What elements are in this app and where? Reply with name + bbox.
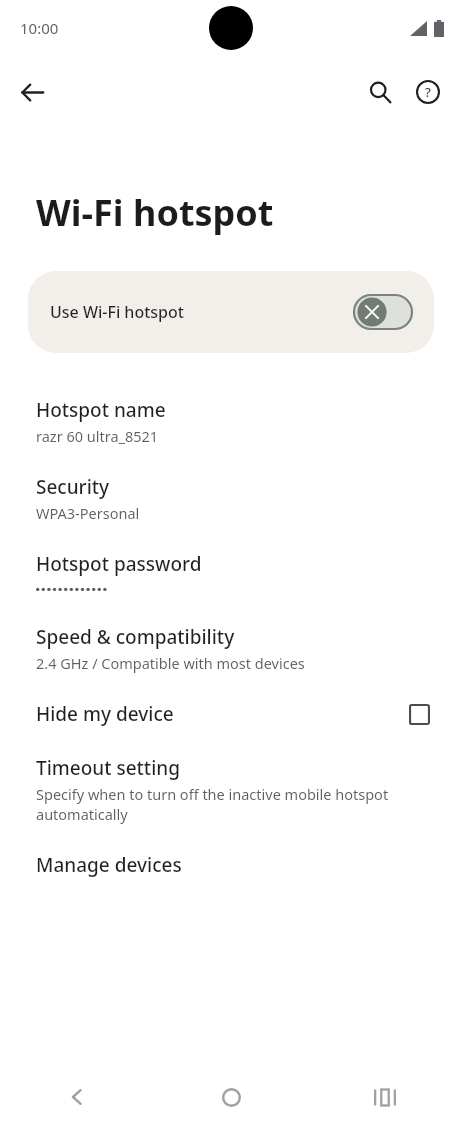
staticText: Manage devices — [36, 852, 182, 878]
button[interactable]: Security — [0, 460, 462, 537]
button[interactable]: Help — [404, 68, 452, 116]
button[interactable]: Recent apps — [308, 1065, 462, 1129]
button[interactable]: Search — [356, 68, 404, 116]
staticText: 2.4 GHz / Compatible with most devices — [36, 653, 305, 673]
button[interactable]: Hide my device — [0, 687, 462, 741]
staticText: razr 60 ultra_8521 — [36, 426, 159, 446]
button[interactable]: Use Wi-Fi hotspot toggle, off — [354, 295, 412, 329]
button[interactable]: Timeout setting — [0, 741, 462, 838]
staticText: Security — [36, 474, 110, 500]
button[interactable]: Use Wi-Fi hotspot — [28, 271, 434, 353]
button[interactable]: Hotspot name — [0, 383, 462, 460]
staticText: Hotspot password — [36, 551, 202, 577]
button[interactable]: Manage devices — [0, 838, 462, 892]
staticText: ? — [425, 83, 431, 101]
button[interactable]: Speed & compatibility — [0, 610, 462, 687]
staticText: Specify when to turn off the inactive mo… — [36, 784, 430, 824]
button[interactable]: Hotspot password — [0, 537, 462, 610]
staticText: Timeout setting — [36, 755, 180, 781]
button[interactable]: Home — [154, 1065, 308, 1129]
staticText: Speed & compatibility — [36, 624, 235, 650]
staticText: WPA3-Personal — [36, 503, 140, 523]
staticText: Use Wi-Fi hotspot — [50, 301, 184, 323]
button[interactable]: Back — [0, 1065, 154, 1129]
staticText: 10:00 — [20, 18, 59, 38]
staticText: Wi-Fi hotspot — [36, 188, 274, 237]
button[interactable]: Back — [8, 68, 56, 116]
staticText: Hotspot name — [36, 397, 166, 423]
staticText: Hide my device — [36, 701, 409, 727]
